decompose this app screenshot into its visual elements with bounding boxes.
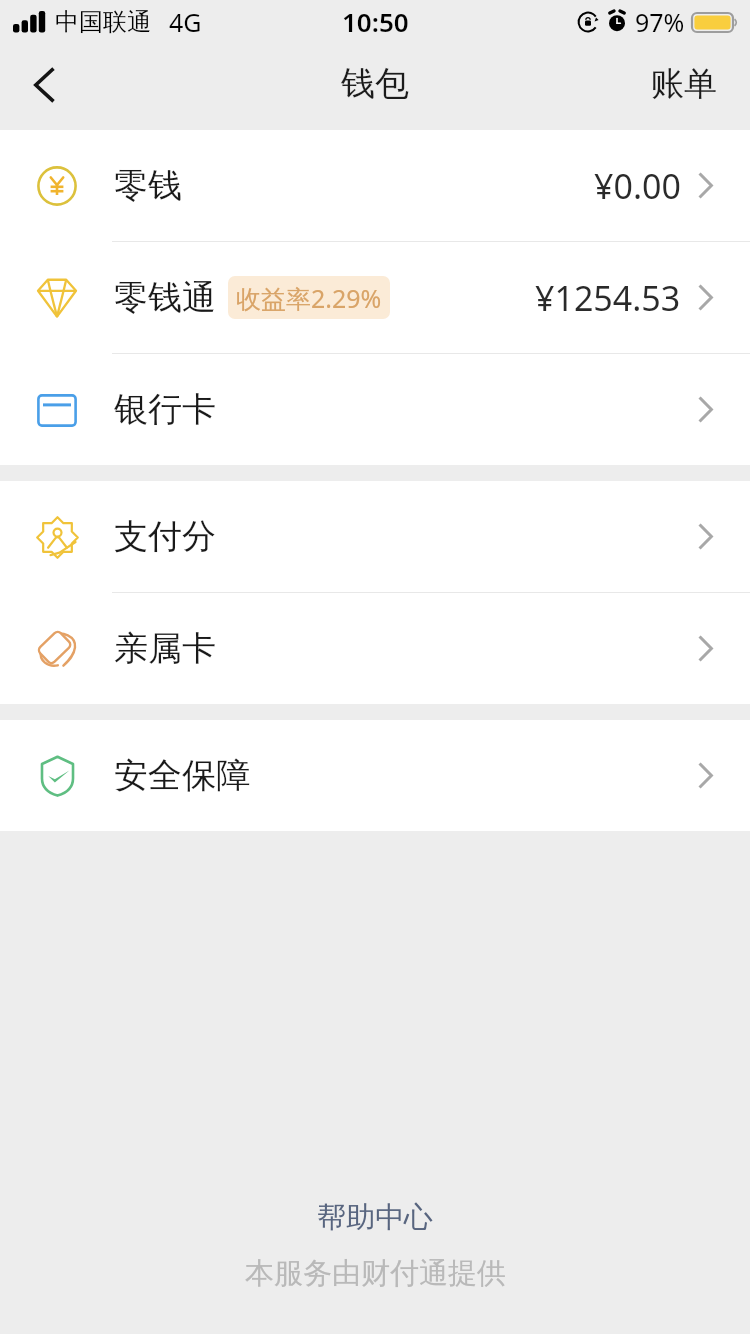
- button[interactable]: 支付分: [0, 481, 750, 592]
- staticText: 亲属卡: [114, 627, 216, 670]
- staticText: 中国联通: [55, 7, 151, 37]
- staticText: 银行卡: [114, 388, 216, 431]
- staticText: 零钱: [114, 164, 182, 207]
- staticText: 4G: [169, 5, 202, 39]
- staticText: 帮助中心: [317, 1199, 433, 1236]
- staticText: 收益率2.29%: [236, 281, 382, 315]
- staticText: 支付分: [114, 515, 216, 558]
- button[interactable]: Back: [0, 44, 86, 130]
- staticText: 97%: [635, 5, 685, 39]
- button[interactable]: 安全保障: [0, 720, 750, 831]
- staticText: ¥1254.53: [535, 275, 681, 321]
- staticText: ¥0.00: [594, 163, 681, 209]
- button[interactable]: 零钱通: [0, 242, 750, 353]
- button[interactable]: 银行卡: [0, 354, 750, 465]
- staticText: 10:50: [342, 4, 409, 39]
- staticText: 本服务由财付通提供: [245, 1255, 506, 1292]
- button[interactable]: 亲属卡: [0, 593, 750, 704]
- staticText: 零钱通: [114, 276, 216, 319]
- button[interactable]: 帮助中心: [299, 1195, 451, 1240]
- button[interactable]: 零钱: [0, 130, 750, 241]
- staticText: 账单: [651, 63, 717, 105]
- staticText: 安全保障: [114, 754, 250, 797]
- button[interactable]: 账单: [627, 44, 750, 130]
- staticText: 钱包: [341, 62, 409, 105]
